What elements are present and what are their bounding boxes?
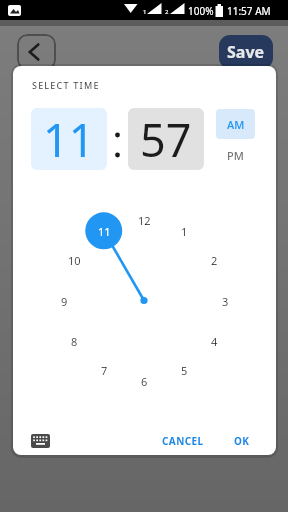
staticText: 7: [101, 363, 108, 378]
button[interactable]: OK: [222, 428, 262, 454]
staticText: OK: [234, 434, 250, 448]
staticText: 11: [43, 109, 95, 170]
staticText: 2: [211, 253, 218, 268]
staticText: CANCEL: [162, 434, 204, 448]
staticText: 3: [222, 294, 229, 309]
button[interactable]: Save: [219, 35, 273, 69]
staticText: 4: [211, 334, 218, 349]
staticText: 9: [61, 294, 68, 309]
staticText: 1: [143, 8, 147, 16]
staticText: 11:57 AM: [227, 4, 271, 18]
staticText: PM: [227, 148, 244, 163]
staticText: 11: [98, 224, 111, 239]
button[interactable]: CANCEL: [153, 428, 213, 454]
staticText: 8: [71, 334, 78, 349]
staticText: 100%: [188, 4, 214, 18]
button[interactable]: [17, 34, 56, 70]
staticText: 1: [181, 224, 188, 239]
staticText: 5: [181, 363, 188, 378]
button[interactable]: 57: [128, 108, 204, 170]
staticText: AM: [227, 117, 245, 132]
button[interactable]: AM: [216, 109, 255, 139]
button[interactable]: 11: [31, 108, 107, 170]
button[interactable]: PM: [216, 140, 255, 170]
staticText: 12: [138, 213, 151, 228]
button[interactable]: [27, 428, 55, 454]
staticText: 57: [140, 109, 192, 170]
staticText: 10: [68, 253, 81, 268]
staticText: 6: [141, 374, 148, 389]
staticText: Save: [227, 41, 265, 63]
staticText: 2: [165, 8, 169, 16]
staticText: SELECT TIME: [32, 79, 100, 91]
